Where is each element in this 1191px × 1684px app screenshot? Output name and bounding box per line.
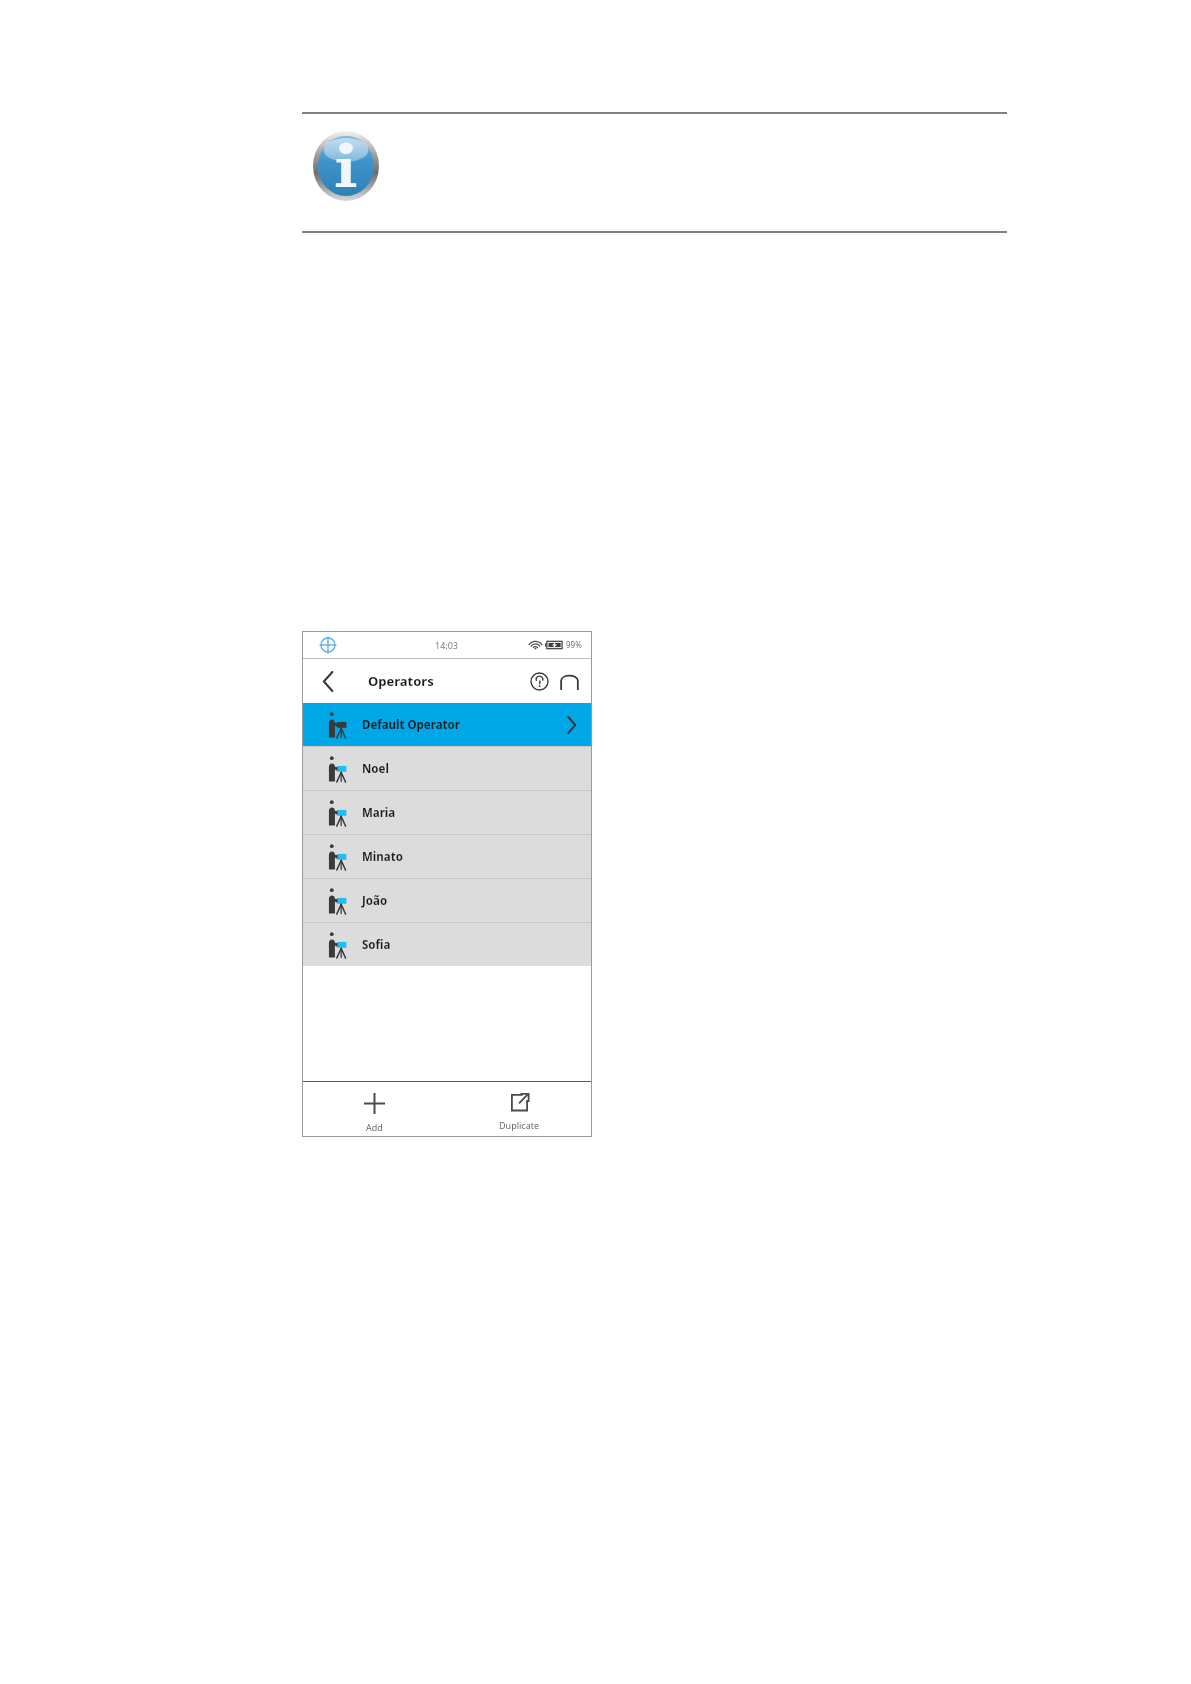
button[interactable]: Noel bbox=[302, 747, 592, 790]
staticText: João bbox=[362, 893, 388, 909]
button[interactable]: Home bbox=[555, 667, 583, 695]
staticText: Operators bbox=[368, 672, 434, 690]
button[interactable]: Maria bbox=[302, 791, 592, 834]
staticText: Sofia bbox=[362, 937, 391, 953]
button[interactable]: Duplicate bbox=[447, 1082, 592, 1137]
staticText: Duplicate bbox=[499, 1119, 540, 1131]
button[interactable]: Help bbox=[525, 667, 553, 695]
staticText: 14:03 bbox=[435, 639, 459, 651]
other: Location bbox=[320, 637, 336, 653]
button[interactable]: Add bbox=[302, 1082, 447, 1137]
button[interactable]: Default Operator bbox=[302, 703, 592, 746]
button[interactable]: Sofia bbox=[302, 923, 592, 966]
staticText: Add bbox=[366, 1121, 383, 1133]
button[interactable]: João bbox=[302, 879, 592, 922]
button[interactable]: Minato bbox=[302, 835, 592, 878]
staticText: Minato bbox=[362, 849, 403, 865]
staticText: 99% bbox=[566, 639, 582, 650]
staticText: Maria bbox=[362, 805, 396, 821]
staticText: Noel bbox=[362, 761, 389, 777]
button[interactable]: Back bbox=[312, 665, 344, 697]
staticText: Default Operator bbox=[362, 717, 460, 733]
